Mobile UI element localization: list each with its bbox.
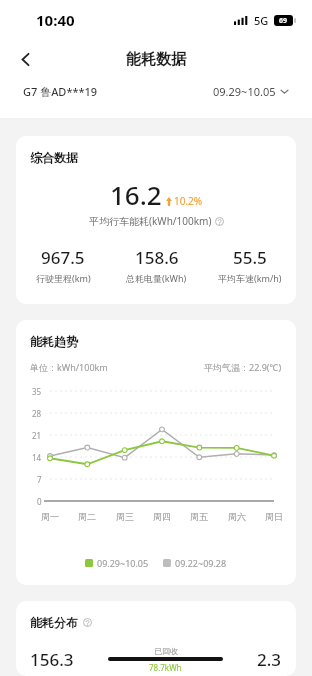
staticText: 09.29~10.05: [97, 557, 149, 569]
staticText: 7: [37, 474, 42, 485]
staticText: 69: [279, 16, 288, 26]
staticText: 21: [32, 430, 42, 441]
button[interactable]: Back: [8, 42, 42, 76]
staticText: 周三: [116, 511, 134, 522]
staticText: 能耗数据: [126, 50, 186, 69]
staticText: 周一: [41, 511, 59, 522]
staticText: 能耗趋势: [30, 334, 78, 349]
staticText: 2.3: [257, 648, 282, 671]
staticText: 综合数据: [30, 150, 78, 165]
staticText: 09.22~09.28: [175, 557, 227, 569]
staticText: 周四: [153, 511, 171, 522]
staticText: 10:40: [36, 10, 75, 30]
staticText: 10.2%: [174, 194, 203, 208]
staticText: 78.7kWh: [149, 662, 182, 673]
staticText: 967.5: [41, 246, 85, 269]
staticText: 行驶里程(km): [36, 272, 91, 284]
staticText: 单位：kWh/100km: [30, 361, 108, 373]
staticText: 周二: [78, 511, 96, 522]
staticText: 周六: [228, 511, 246, 522]
staticText: 156.3: [30, 648, 74, 671]
button[interactable]: 09.22~09.28: [163, 557, 227, 569]
staticText: 16.2: [110, 177, 162, 212]
staticText: 09.29~10.05: [213, 84, 276, 99]
staticText: 28: [32, 408, 42, 419]
staticText: 周日: [265, 511, 283, 522]
staticText: 周五: [190, 511, 208, 522]
staticText: G7 鲁AD***19: [23, 84, 98, 99]
staticText: 平均车速(km/h): [218, 272, 282, 284]
staticText: 35: [32, 386, 42, 397]
staticText: 平均行车能耗(kWh/100km): [89, 214, 212, 228]
staticText: 能耗分布: [30, 615, 78, 630]
staticText: 55.5: [233, 246, 267, 269]
staticText: 平均气温：22.9(℃): [204, 361, 282, 373]
staticText: 158.6: [135, 246, 179, 269]
staticText: 5G: [254, 13, 269, 28]
button[interactable]: 09.29~10.05: [213, 84, 289, 99]
button[interactable]: 09.29~10.05: [85, 557, 149, 569]
staticText: 总耗电量(kWh): [126, 272, 187, 284]
staticText: 已回收: [154, 646, 178, 656]
staticText: 0: [37, 496, 42, 507]
staticText: 14: [32, 452, 42, 463]
